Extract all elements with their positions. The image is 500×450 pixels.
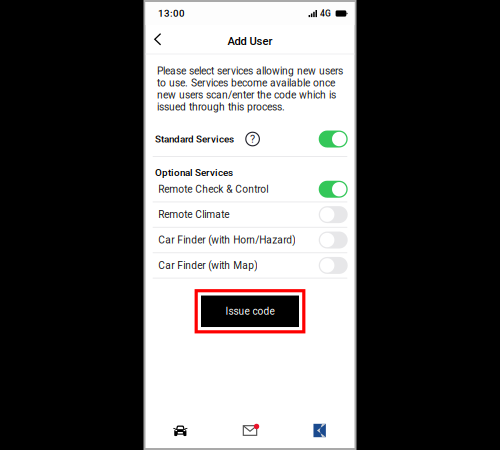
button[interactable]: Back (145, 25, 170, 53)
staticText: 4G (320, 8, 331, 18)
staticText: 13:00 (158, 8, 185, 19)
staticText: ? (250, 133, 255, 145)
button[interactable]: Issue code (195, 289, 305, 333)
button[interactable]: Standard Services (145, 130, 354, 156)
staticText: Car Finder (with Horn/Hazard) (158, 234, 296, 246)
staticText: Standard Services (155, 133, 234, 145)
button[interactable]: Car Finder (with Horn/Hazard) (145, 228, 354, 252)
staticText: Remote Check & Control (158, 183, 268, 195)
staticText: Car Finder (with Map) (158, 259, 258, 271)
button[interactable]: Vehicle (145, 418, 215, 442)
staticText: Please select services allowing new user… (157, 65, 343, 113)
button[interactable]: Car Finder (with Map) (145, 253, 354, 278)
button[interactable]: Kia (285, 418, 354, 442)
button[interactable]: Messages (215, 418, 285, 442)
staticText: Add User (227, 34, 272, 48)
staticText: Issue code (225, 305, 274, 317)
staticText: Remote Climate (158, 209, 229, 221)
button[interactable]: Remote Climate (145, 202, 354, 227)
staticText: Optional Services (155, 167, 233, 178)
button[interactable]: Remote Check & Control (145, 177, 354, 201)
